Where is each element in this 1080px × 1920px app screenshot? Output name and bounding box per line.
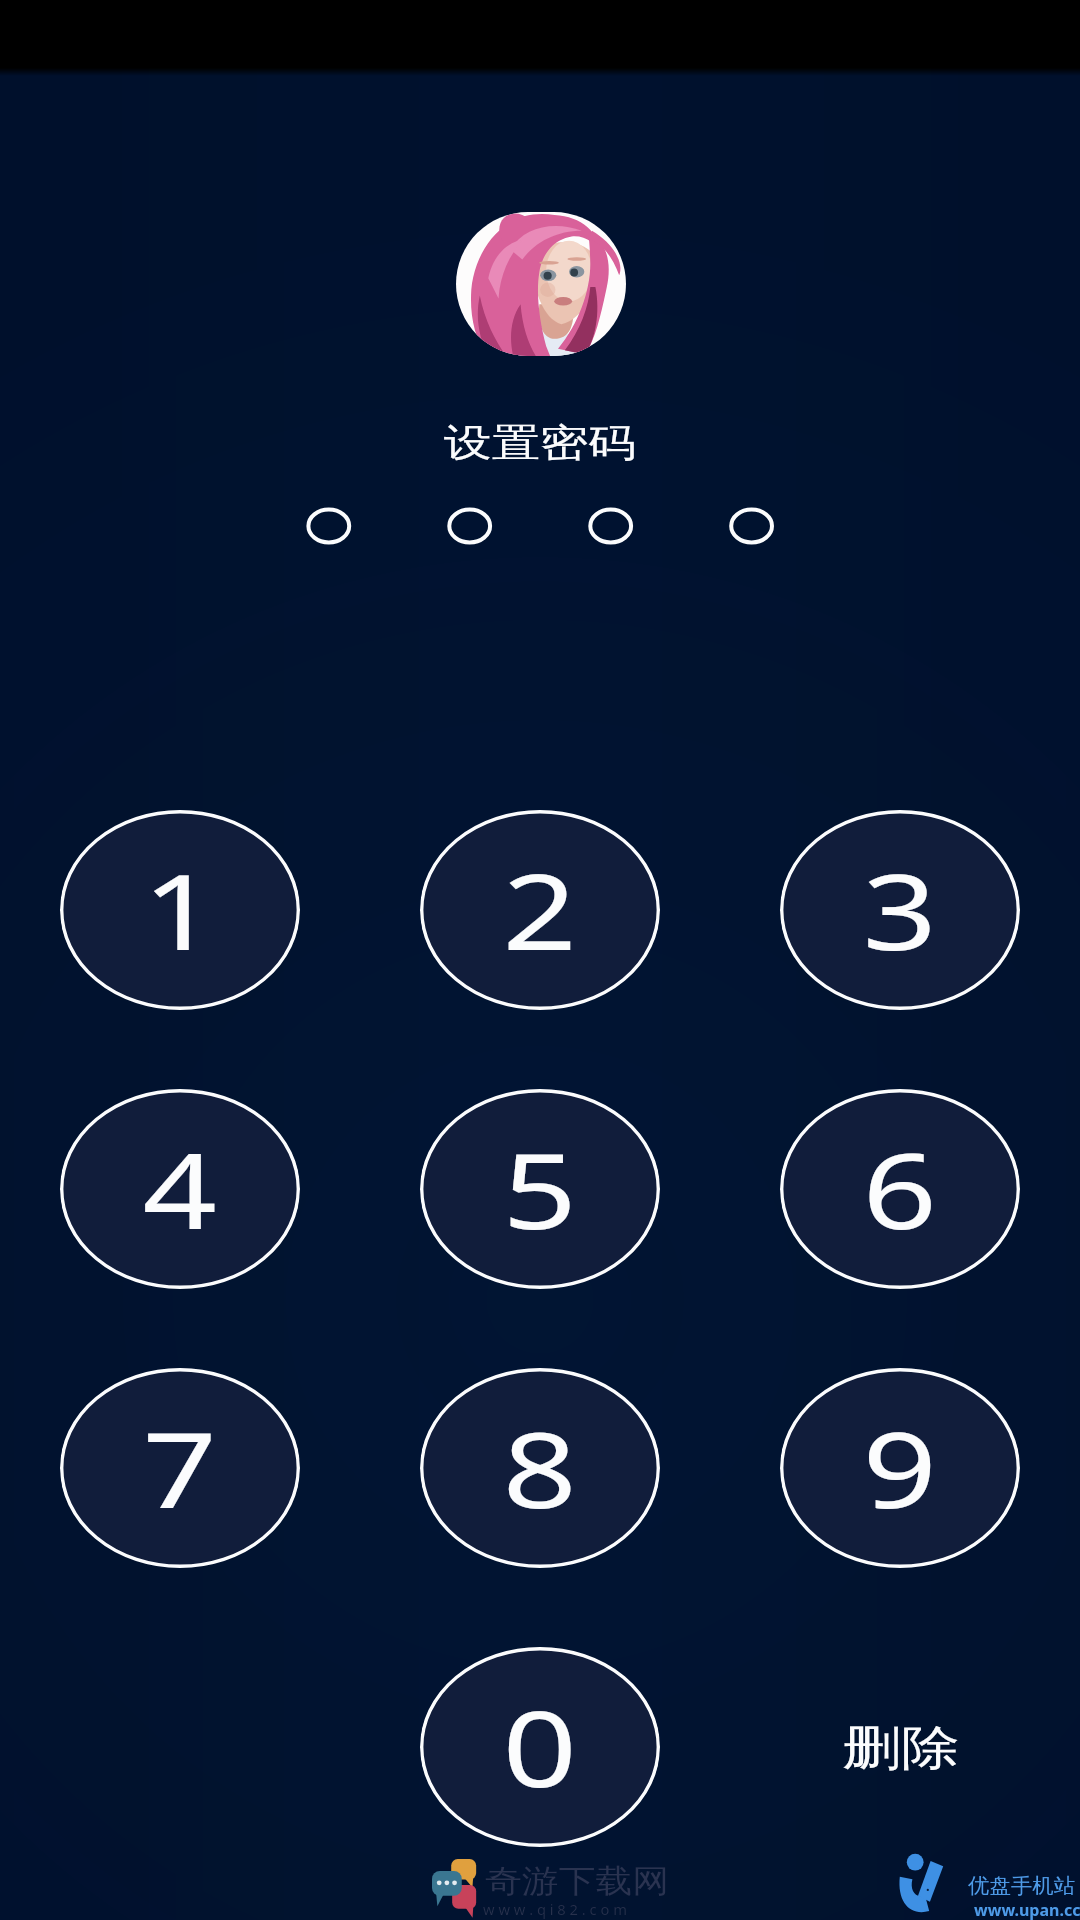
staticText: 0 (502, 1676, 577, 1818)
staticText: 4 (142, 1118, 217, 1260)
other: upan.cc watermark (897, 1849, 967, 1915)
staticText: 6 (862, 1118, 937, 1260)
button[interactable]: 3 (780, 810, 1020, 1010)
staticText: 8 (502, 1397, 577, 1539)
button[interactable]: 8 (420, 1368, 660, 1568)
staticText: 9 (862, 1397, 937, 1539)
staticText: 奇游下载网 (485, 1861, 669, 1901)
staticText: 7 (142, 1397, 217, 1539)
staticText: 删除 (842, 1719, 960, 1778)
button[interactable]: 删除 (780, 1648, 1021, 1848)
staticText: www.upan.cc (974, 1899, 1080, 1920)
other: Profile avatar (456, 212, 626, 356)
staticText: w w w . q i 8 2 . c o m (483, 1900, 628, 1919)
staticText: 优盘手机站 (968, 1873, 1075, 1899)
button[interactable]: 7 (60, 1368, 300, 1568)
staticText: 设置密码 (444, 419, 636, 468)
button[interactable]: 9 (780, 1368, 1020, 1568)
staticText: 1 (142, 839, 217, 981)
button[interactable]: 5 (420, 1089, 660, 1289)
button[interactable]: 1 (60, 810, 300, 1010)
staticText: 2 (502, 839, 577, 981)
button[interactable]: 4 (60, 1089, 300, 1289)
button[interactable]: 2 (420, 810, 660, 1010)
button[interactable]: 0 (420, 1647, 660, 1847)
staticText: 3 (862, 839, 937, 981)
staticText: 5 (502, 1118, 577, 1260)
button[interactable]: 6 (780, 1089, 1020, 1289)
